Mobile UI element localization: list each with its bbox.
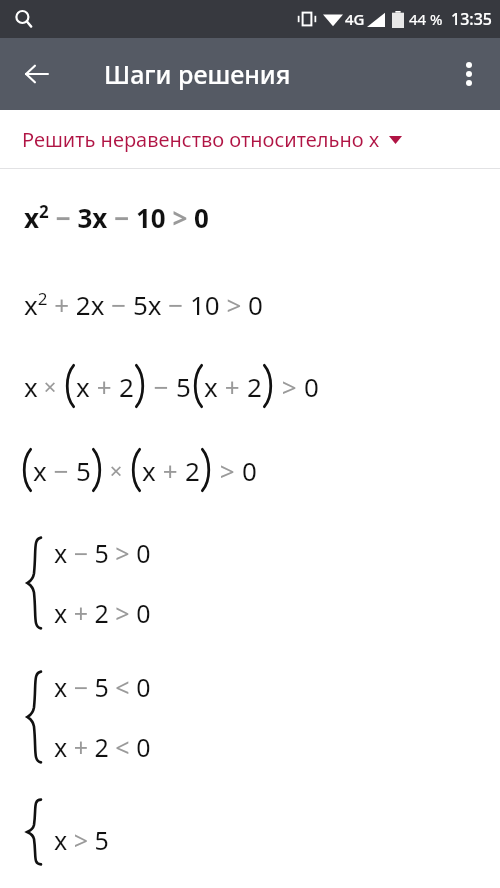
- staticText: x2 + 2x − 5x − 10 > 0: [24, 287, 263, 322]
- staticText: 4G: [345, 9, 365, 29]
- staticText: x: [142, 453, 156, 488]
- button[interactable]: x: [0, 363, 500, 409]
- staticText: +: [156, 453, 185, 488]
- staticText: Шаги решения: [104, 57, 291, 91]
- staticText: x2 − 3x − 10 > 0: [24, 200, 209, 235]
- button[interactable]: x > 5: [0, 797, 500, 887]
- staticText: 44 %: [409, 9, 443, 29]
- staticText: −: [147, 369, 176, 404]
- staticText: >: [275, 369, 304, 404]
- button[interactable]: Решить неравенство относительно x: [0, 111, 500, 168]
- staticText: 2: [119, 369, 134, 404]
- staticText: 5: [176, 369, 191, 404]
- staticText: 0: [242, 453, 257, 488]
- button[interactable]: x2 − 3x − 10 > 0: [0, 191, 500, 243]
- button[interactable]: x − 5 < 0: [0, 661, 500, 773]
- button[interactable]: More options: [446, 51, 492, 97]
- staticText: x + 2 > 0: [54, 596, 151, 630]
- staticText: Решить неравенство относительно x: [22, 126, 380, 153]
- staticText: 13:35: [451, 8, 492, 30]
- staticText: 2: [185, 453, 200, 488]
- staticText: 0: [304, 369, 319, 404]
- staticText: x: [24, 369, 38, 404]
- staticText: ×: [104, 455, 129, 485]
- button[interactable]: x2 + 2x − 5x − 10 > 0: [0, 281, 500, 327]
- staticText: +: [218, 369, 247, 404]
- staticText: ×: [38, 371, 63, 401]
- button[interactable]: x − 5 > 0: [0, 527, 500, 639]
- staticText: x: [204, 369, 218, 404]
- staticText: x > 5: [54, 823, 109, 857]
- staticText: >: [213, 453, 242, 488]
- button[interactable]: Back: [14, 51, 60, 97]
- staticText: −: [47, 453, 76, 488]
- staticText: 2: [247, 369, 262, 404]
- button[interactable]: x: [0, 447, 500, 493]
- staticText: x − 5 > 0: [54, 536, 151, 570]
- staticText: 5: [76, 453, 91, 488]
- staticText: x + 2 < 0: [54, 730, 151, 764]
- staticText: x − 5 < 0: [54, 670, 151, 704]
- button[interactable]: Search: [10, 5, 38, 33]
- staticText: +: [90, 369, 119, 404]
- staticText: x: [76, 369, 90, 404]
- staticText: x: [33, 453, 47, 488]
